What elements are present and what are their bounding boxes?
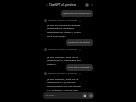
staticText: Quelle version de gpt es-tu [63, 12, 91, 15]
staticText: Réflexion durant 4 secondes [48, 48, 78, 51]
staticText: Je suis un modèle de langage d'intellige… [47, 23, 84, 38]
staticText: Je suis ChatGPT, basé sur le modèle GPT-… [47, 55, 84, 66]
button[interactable]: Donne-moi ta version [66, 39, 93, 46]
staticText: Message [45, 94, 55, 97]
staticText: Réflexion durant 4 secondes [48, 19, 78, 22]
button[interactable]: Back [44, 2, 49, 7]
staticText: Je suis ChatGPT, basé sur le modèle GPT-… [47, 77, 84, 96]
staticText: Donne-moi ta version [68, 41, 91, 44]
button[interactable]: Voice mode [88, 93, 93, 98]
button[interactable]: New chat [84, 2, 89, 7]
staticText: Tu es pas o1-preview ? [68, 66, 91, 69]
button[interactable]: Quelle version de gpt es-tu [61, 10, 93, 17]
staticText: Réflexion durant 5 secondes [48, 72, 78, 75]
button[interactable]: Message [43, 92, 94, 99]
button[interactable]: Tu es pas o1-preview ? [66, 64, 93, 71]
button[interactable]: More options [89, 2, 94, 7]
staticText: ChatGPT o1-preview [49, 3, 76, 7]
button[interactable]: Attach file [82, 93, 87, 98]
